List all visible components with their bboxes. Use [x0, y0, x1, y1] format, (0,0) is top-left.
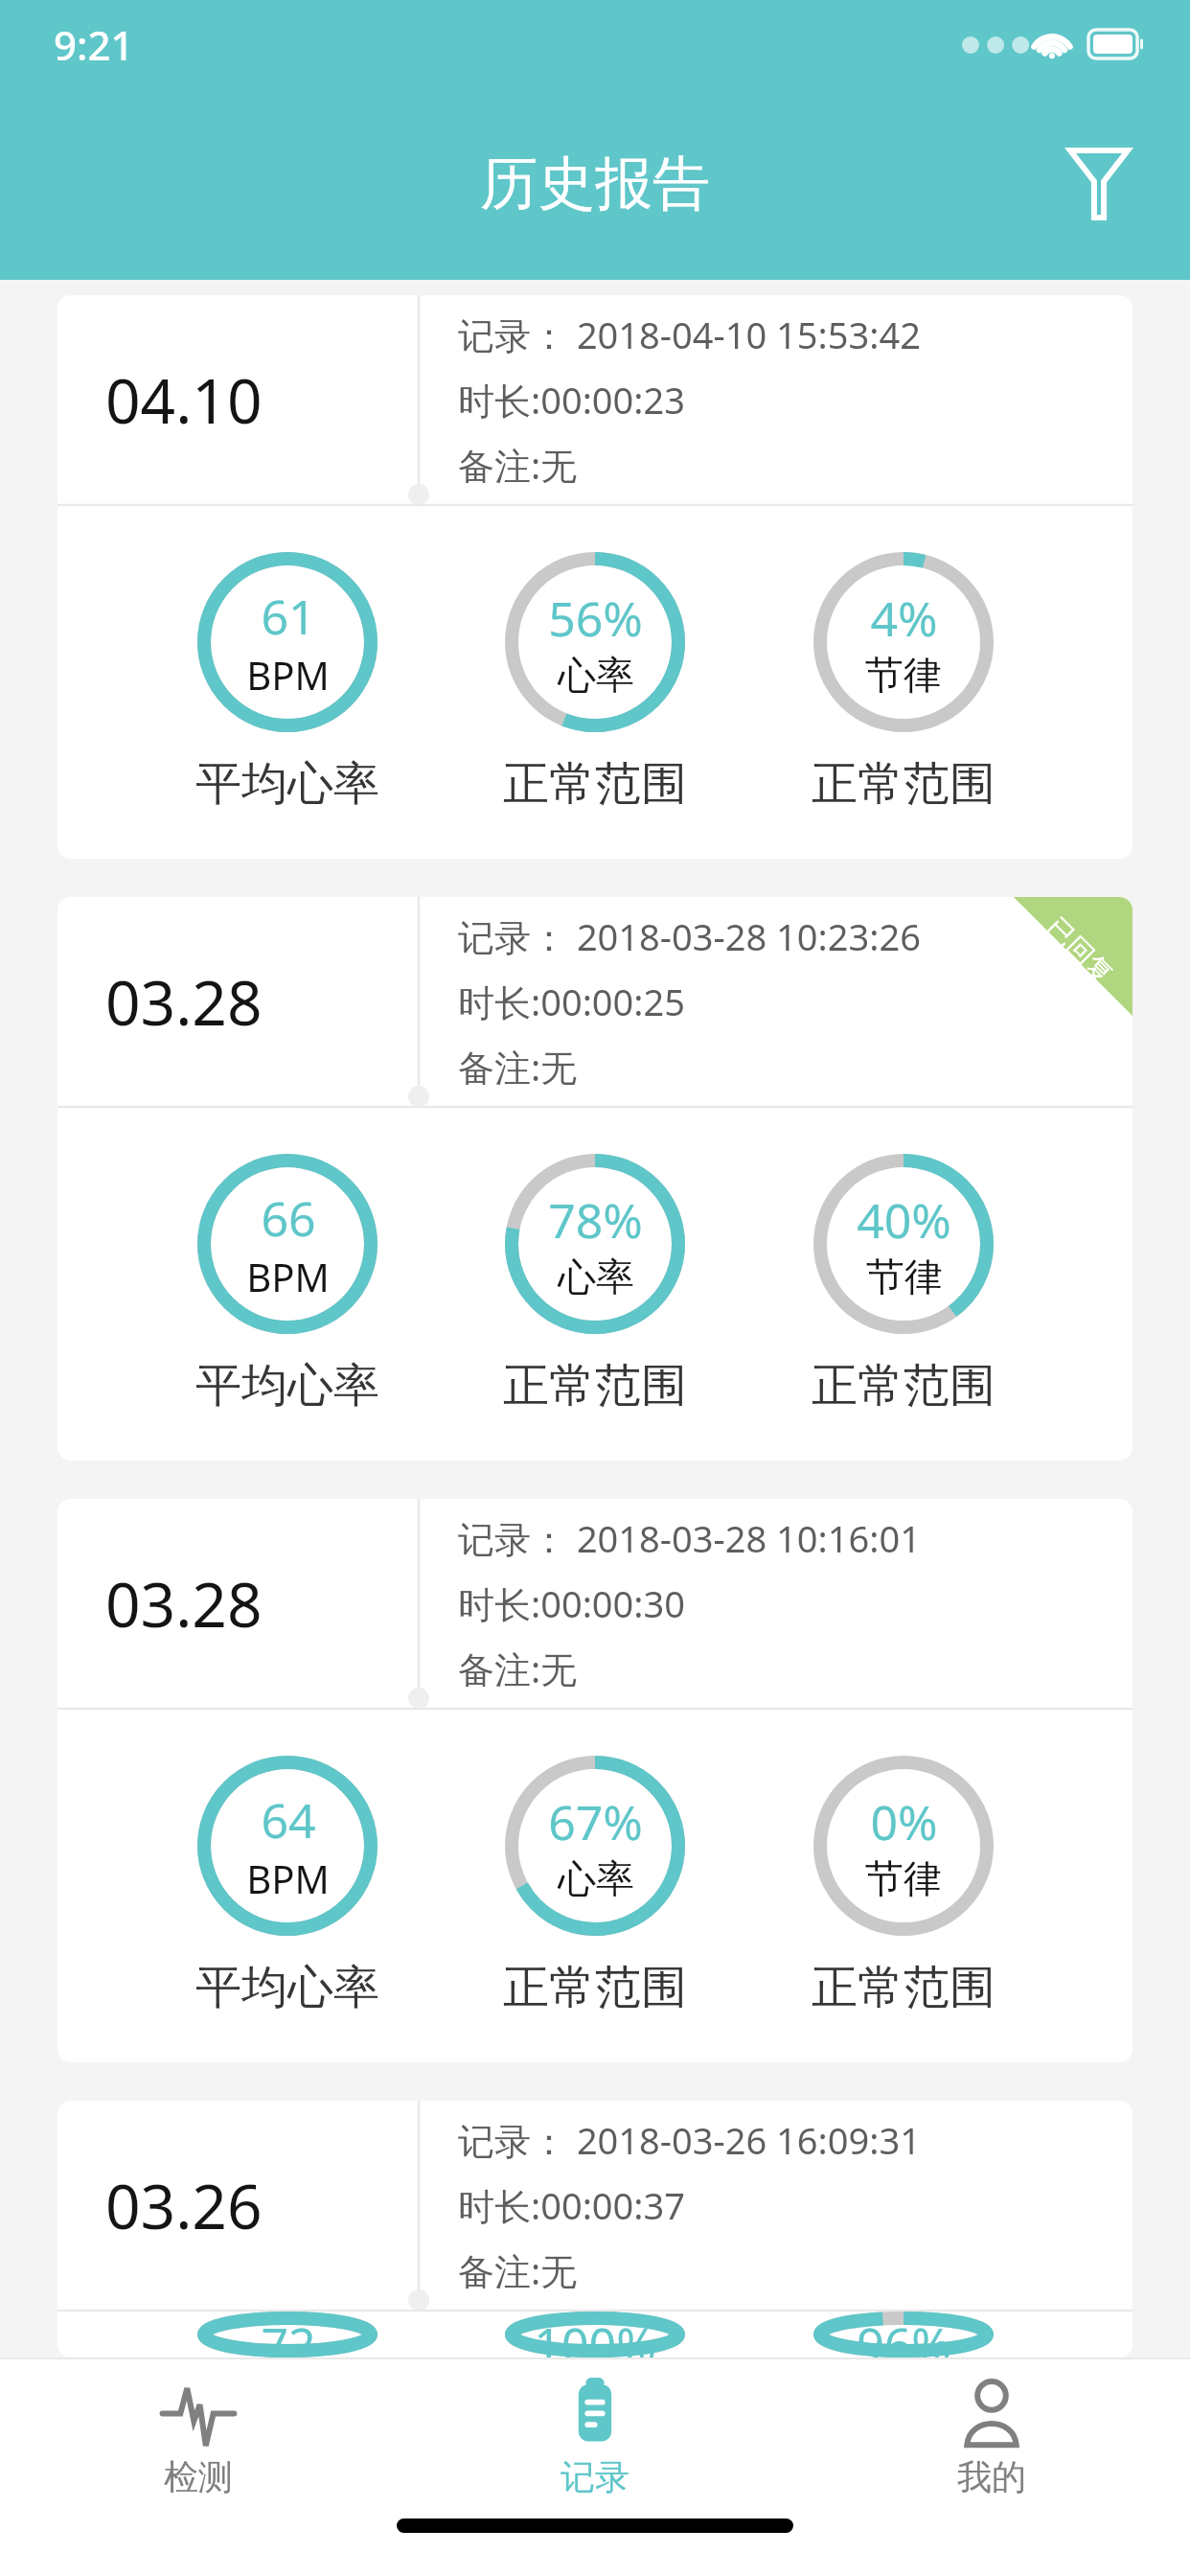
- staticText: 96%: [857, 2311, 951, 2357]
- staticText: 历史报告: [480, 148, 710, 220]
- staticText: 04.10: [105, 358, 263, 442]
- staticText: 时长:00:00:37: [458, 2180, 685, 2230]
- staticText: 备注:无: [458, 1042, 578, 1092]
- staticText: 节律: [865, 1854, 942, 1902]
- button[interactable]: 03.28: [57, 1499, 1133, 2062]
- staticText: 心率: [558, 651, 634, 699]
- staticText: 心率: [558, 1854, 634, 1902]
- staticText: 正常范围: [812, 755, 995, 813]
- button[interactable]: 03.26: [57, 2101, 1133, 2357]
- staticText: 平均心率: [195, 755, 379, 813]
- staticText: 记录： 2018-03-28 10:23:26: [458, 911, 921, 961]
- button[interactable]: 检测: [0, 2359, 397, 2513]
- staticText: 平均心率: [195, 1959, 379, 2016]
- staticText: 备注:无: [458, 440, 578, 490]
- staticText: 67%: [548, 1789, 643, 1854]
- staticText: 记录： 2018-03-26 16:09:31: [458, 2115, 921, 2165]
- staticText: 03.28: [105, 1562, 263, 1645]
- staticText: 记录: [561, 2455, 629, 2498]
- staticText: 平均心率: [195, 1357, 379, 1414]
- staticText: BPM: [246, 1251, 330, 1302]
- button[interactable]: 04.10: [57, 295, 1133, 859]
- staticText: 正常范围: [503, 755, 687, 813]
- staticText: 72: [261, 2311, 316, 2357]
- staticText: 时长:00:00:25: [458, 977, 685, 1026]
- staticText: 正常范围: [503, 1959, 687, 2016]
- button[interactable]: Filter: [1046, 131, 1152, 237]
- staticText: 备注:无: [458, 2245, 578, 2295]
- staticText: 4%: [870, 586, 938, 651]
- staticText: 03.26: [105, 2164, 263, 2247]
- staticText: 0%: [870, 1789, 938, 1854]
- staticText: 时长:00:00:23: [458, 375, 685, 425]
- staticText: 节律: [866, 1253, 943, 1300]
- staticText: 78%: [548, 1187, 643, 1253]
- button[interactable]: 03.28: [57, 897, 1133, 1460]
- staticText: 我的: [957, 2455, 1026, 2498]
- staticText: 已回复: [1039, 911, 1120, 991]
- staticText: 正常范围: [812, 1959, 995, 2016]
- staticText: 记录： 2018-03-28 10:16:01: [458, 1513, 921, 1563]
- staticText: 66: [261, 1185, 316, 1251]
- staticText: 节律: [865, 651, 942, 699]
- staticText: BPM: [246, 649, 330, 701]
- staticText: 56%: [548, 586, 643, 651]
- staticText: 心率: [558, 1253, 634, 1300]
- button[interactable]: 我的: [793, 2359, 1190, 2513]
- staticText: BPM: [246, 1852, 330, 1904]
- staticText: 备注:无: [458, 1644, 578, 1693]
- staticText: 正常范围: [503, 1357, 687, 1414]
- staticText: 03.28: [105, 960, 263, 1044]
- staticText: 40%: [857, 1187, 951, 1253]
- staticText: 正常范围: [812, 1357, 995, 1414]
- staticText: 100%: [534, 2311, 656, 2357]
- staticText: 时长:00:00:30: [458, 1578, 685, 1628]
- staticText: 64: [261, 1787, 316, 1852]
- staticText: 检测: [164, 2455, 233, 2498]
- staticText: 61: [261, 584, 316, 649]
- staticText: 9:21: [54, 17, 134, 72]
- staticText: 记录： 2018-04-10 15:53:42: [458, 310, 921, 359]
- button[interactable]: 记录: [397, 2359, 793, 2513]
